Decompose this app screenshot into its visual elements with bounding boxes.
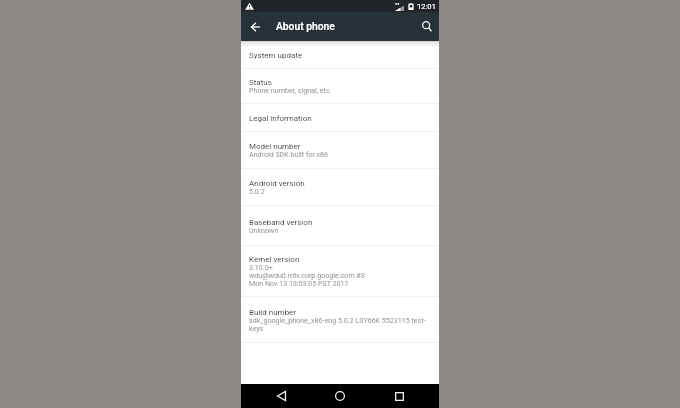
button[interactable]: Baseband version xyxy=(241,206,439,245)
staticText: sdk_google_phone_x86-eng 5.0.2 LSY66K 55… xyxy=(249,317,431,333)
staticText: wdu@wdu0.mtv.corp.google.com #3 xyxy=(249,272,365,280)
staticText: About phone xyxy=(276,20,335,32)
button[interactable]: Android version xyxy=(241,169,439,205)
button[interactable]: Navigate up xyxy=(243,12,268,41)
staticText: Baseband version xyxy=(249,217,313,227)
button[interactable]: Back xyxy=(271,386,291,406)
staticText: System update xyxy=(249,50,303,60)
button[interactable]: Recent apps xyxy=(389,386,409,406)
staticText: Model number xyxy=(249,141,301,151)
staticText: Kernel version xyxy=(249,254,300,264)
staticText: Unknown xyxy=(249,227,279,235)
button[interactable]: Home xyxy=(330,386,350,406)
staticText: Legal information xyxy=(249,113,312,123)
button[interactable]: System update xyxy=(241,41,439,68)
staticText: Phone number, signal, etc. xyxy=(249,87,332,95)
button[interactable]: Model number xyxy=(241,132,439,168)
staticText: Mon Nov 13 13:53:05 PST 2017 xyxy=(249,280,349,288)
button[interactable]: Kernel version xyxy=(241,246,439,296)
staticText: Build number xyxy=(249,307,297,317)
staticText: 3.10.0+ xyxy=(249,264,273,272)
staticText: 12:01 xyxy=(417,2,436,11)
staticText: Status xyxy=(249,77,272,87)
button[interactable]: Legal information xyxy=(241,104,439,131)
button[interactable]: Status xyxy=(241,69,439,103)
staticText: Android SDK built for x86 xyxy=(249,151,329,159)
staticText: 5.0.2 xyxy=(249,188,265,196)
button[interactable]: Build number xyxy=(241,297,439,342)
button[interactable]: Search xyxy=(414,12,439,41)
staticText: Android version xyxy=(249,178,305,188)
